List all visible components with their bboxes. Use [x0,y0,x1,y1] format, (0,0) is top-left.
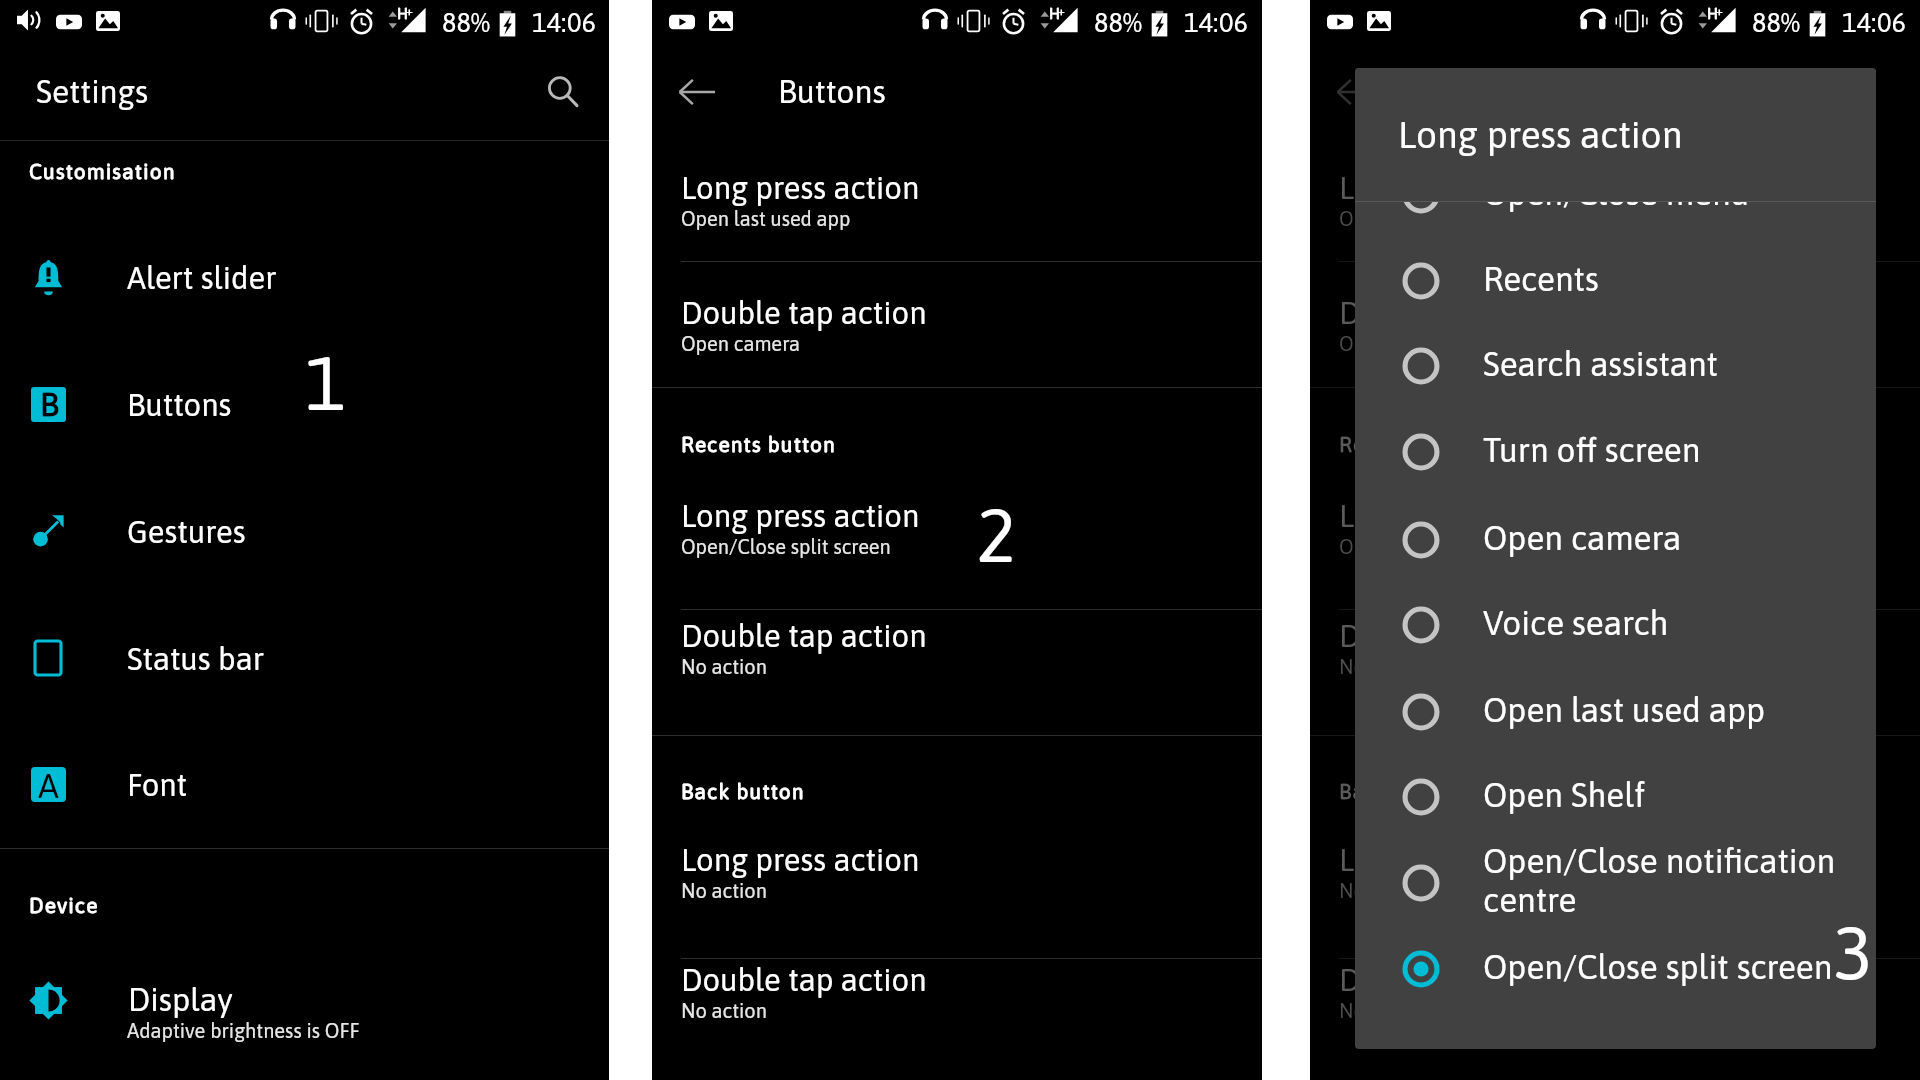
button[interactable]: Open/Close menu [1355,149,1876,235]
staticText: Recents [1483,259,1599,298]
button[interactable] [0,50,609,133]
staticText: Turn off screen [1483,430,1701,469]
staticText: Long press action [1339,841,1578,878]
staticText: H [397,5,408,23]
button[interactable]: Open camera [1355,494,1876,580]
staticText: No action [681,999,767,1023]
button[interactable]: Search [539,68,587,116]
staticText: Status bar [127,640,264,677]
staticText: 2 [976,490,1017,578]
staticText: Open camera [1483,518,1682,557]
staticText: Recents button [681,432,836,457]
button[interactable] [0,214,609,341]
staticText: centre [1483,880,1577,919]
staticText: No action [1339,655,1425,679]
staticText: Open/Close menu [1483,173,1750,212]
staticText: B [40,387,59,420]
staticText: Open last used app [1483,690,1766,729]
staticText: Long press action [681,497,920,534]
staticText: Double tap action [681,294,927,331]
staticText: Buttons [127,386,232,423]
staticText: Long press action [1339,497,1578,534]
staticText: + [406,3,413,17]
button[interactable]: Open/Close split screen [1355,923,1876,1009]
staticText: Display [128,980,233,1018]
staticText: Double tap action [1339,617,1585,654]
staticText: H [1707,5,1718,23]
staticText: Font [127,766,188,803]
staticText: 14:06 [1842,6,1906,38]
button[interactable] [0,944,609,1064]
staticText: Buttons [778,72,886,110]
staticText: 88% [1752,6,1800,38]
button[interactable] [0,341,609,468]
button[interactable] [0,721,609,848]
staticText: Open/Close notification [1483,841,1836,880]
staticText: No action [1339,999,1425,1023]
staticText: Long press action [681,841,920,878]
staticText: Open last used app [1339,207,1509,231]
staticText: 14:06 [532,6,596,38]
button[interactable]: Search assistant [1355,320,1876,406]
button[interactable] [0,468,609,595]
staticText: Open/Close split screen [1483,947,1833,986]
staticText: Alert slider [127,259,277,296]
staticText: Gestures [127,513,246,550]
staticText: 88% [1094,6,1142,38]
staticText: Long press action [681,169,920,206]
staticText: Settings [36,72,149,110]
staticText: + [1058,3,1065,17]
button[interactable]: Open last used app [1355,666,1876,752]
staticText: 3 [1833,908,1874,996]
staticText: Voice search [1483,603,1669,642]
staticText: Double tap action [681,961,927,998]
button[interactable]: Back [672,67,722,117]
button[interactable]: Open/Close notification [1355,837,1876,923]
button[interactable]: Voice search [1355,579,1876,665]
staticText: Open Shelf [1483,775,1646,814]
staticText: Search assistant [1483,344,1718,383]
staticText: 88% [442,6,490,38]
staticText: Open camera [1339,332,1458,356]
staticText: Back button [1339,779,1463,804]
staticText: Customisation [29,159,176,184]
staticText: H [1049,5,1060,23]
button[interactable] [0,595,609,722]
staticText: Recents button [1339,432,1494,457]
staticText: Back button [681,779,805,804]
staticText: + [1716,3,1723,17]
button[interactable]: Open Shelf [1355,751,1876,837]
staticText: Open last used app [681,207,851,231]
staticText: Double tap action [1339,294,1585,331]
staticText: Double tap action [1339,961,1585,998]
button[interactable]: Turn off screen [1355,406,1876,492]
staticText: No action [681,879,767,903]
staticText: Open/Close split screen [1339,535,1549,559]
staticText: Device [29,893,99,918]
staticText: Open camera [681,332,800,356]
staticText: Long press action [1339,169,1578,206]
staticText: No action [1339,879,1425,903]
staticText: Adaptive brightness is OFF [127,1019,360,1043]
staticText: 1 [305,338,346,426]
staticText: Open/Close split screen [681,535,891,559]
staticText: Long press action [1398,112,1683,156]
staticText: 14:06 [1184,6,1248,38]
staticText: Double tap action [681,617,927,654]
staticText: No action [681,655,767,679]
staticText: A [38,767,59,800]
button[interactable]: Recents [1355,235,1876,321]
